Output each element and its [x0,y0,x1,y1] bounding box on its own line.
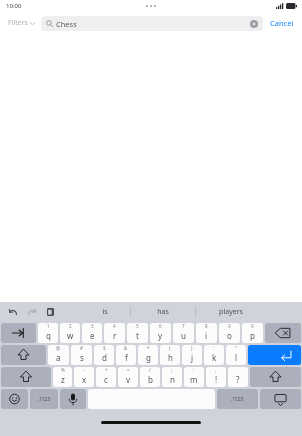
button[interactable]: 9 [219,323,240,343]
staticText: , [215,367,217,373]
staticText: h [168,352,173,363]
staticText: y [158,330,163,341]
staticText: 10:00 [6,2,22,10]
staticText: r [113,330,117,341]
staticText: 7 [182,323,185,329]
staticText: z [61,374,65,385]
staticText: f [125,352,128,363]
button[interactable]: 5 [127,323,148,343]
button[interactable]: Tab [1,323,36,343]
staticText: 2 [69,323,72,329]
staticText: q [46,330,51,341]
staticText: 3 [91,323,94,329]
button[interactable]: Emoji [1,389,28,409]
button[interactable]: Hide keyboard [260,389,301,409]
staticText: l [235,352,238,363]
staticText: ? [236,374,240,385]
button[interactable]: = [118,367,138,387]
staticText: n [170,374,175,385]
staticText: : [193,367,195,373]
button[interactable]: 3 [82,323,102,343]
button[interactable]: ' [204,345,224,365]
button[interactable]: 1 [38,323,58,343]
button[interactable]: # [71,345,92,365]
staticText: + [105,367,108,373]
button[interactable]: & [116,345,136,365]
staticText: p [250,330,255,341]
staticText: 8 [205,323,208,329]
button[interactable]: @ [48,345,69,365]
button[interactable]: ) [182,345,202,365]
button[interactable]: ; [162,367,182,387]
staticText: Chess [56,19,77,29]
staticText: v [126,374,131,385]
staticText: . [237,367,239,373]
staticText: & [124,345,128,351]
button[interactable]: " [226,345,246,365]
staticText: t [136,330,139,341]
staticText: / [149,367,151,373]
staticText: d [102,352,107,363]
staticText: ' [213,345,215,351]
button[interactable]: 7 [173,323,194,343]
staticText: 9 [228,323,231,329]
staticText: ) [191,345,193,351]
button[interactable]: - [74,367,94,387]
button[interactable]: .?123 [30,389,58,409]
staticText: g [146,352,151,363]
button[interactable]: Shift [250,367,301,387]
button[interactable]: . [228,367,248,387]
button[interactable]: Redo [26,306,38,318]
button[interactable]: * [138,345,158,365]
button[interactable]: Return [248,345,301,365]
button[interactable]: ( [160,345,180,365]
staticText: x [82,374,87,385]
staticText: Cancel [270,18,294,28]
button[interactable]: Dictate [60,389,86,409]
button[interactable]: Paste [44,306,56,318]
button[interactable]: + [96,367,116,387]
button[interactable]: : [184,367,204,387]
button[interactable]: Clear search [250,20,258,28]
staticText: ( [169,345,171,351]
button[interactable]: has [131,302,195,321]
staticText: s [80,352,84,363]
staticText: players [219,307,243,317]
button[interactable]: 4 [104,323,125,343]
button[interactable]: .?123 [217,389,258,409]
button[interactable]: is [79,302,130,321]
button[interactable]: 0 [242,323,263,343]
staticText: j [191,352,194,363]
staticText: $ [103,345,106,351]
button[interactable]: Backspace [265,323,301,343]
staticText: e [90,330,95,341]
staticText: * [147,345,150,351]
staticText: = [127,367,130,373]
staticText: ! [215,374,218,385]
button[interactable]: , [206,367,226,387]
staticText: w [67,330,74,341]
staticText: k [212,352,217,363]
staticText: Filters [8,18,28,28]
button[interactable]: 8 [196,323,217,343]
button[interactable]: Shift [1,367,51,387]
button[interactable]: 2 [60,323,80,343]
button[interactable]: $ [94,345,114,365]
button[interactable]: Shift [1,345,46,365]
staticText: .?123 [231,396,244,403]
staticText: m [190,374,198,385]
button[interactable]: players [196,302,265,321]
button[interactable]: Filters [6,15,37,31]
button[interactable]: % [53,367,72,387]
button[interactable]: Undo [7,306,19,318]
staticText: has [157,307,169,317]
staticText: b [148,374,153,385]
button[interactable]: / [140,367,160,387]
button[interactable]: 6 [150,323,171,343]
button[interactable]: Cancel [268,15,296,31]
button[interactable]: Chess [41,16,263,31]
staticText: 4 [113,323,116,329]
staticText: c [104,374,108,385]
staticText: i [205,330,208,341]
